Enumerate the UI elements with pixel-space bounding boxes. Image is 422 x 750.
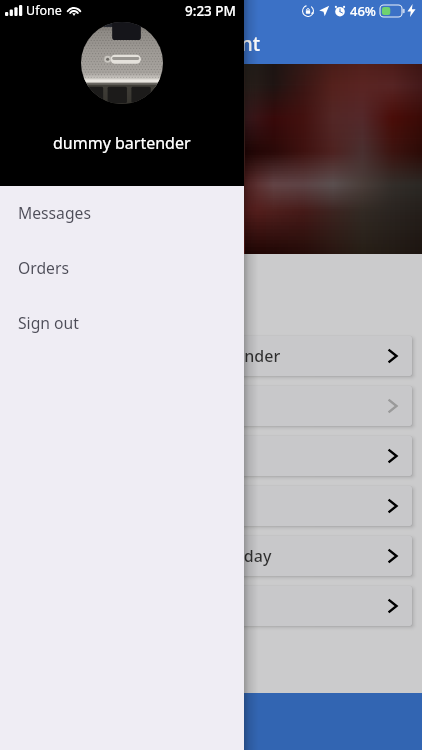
- button[interactable]: Sign out: [0, 297, 244, 352]
- button[interactable]: Orders: [0, 242, 244, 297]
- button[interactable]: [10, 386, 412, 426]
- staticText: Orders: [18, 257, 69, 278]
- staticText: Messages: [18, 202, 91, 223]
- button[interactable]: Wednesday: [10, 536, 412, 576]
- button[interactable]: [10, 486, 412, 526]
- staticText: 9:23 PM: [185, 2, 236, 20]
- staticText: Wednesday: [183, 545, 272, 567]
- staticText: Monday 7pm Bartender: [98, 345, 281, 367]
- button[interactable]: [10, 436, 412, 476]
- button[interactable]: [10, 586, 412, 626]
- staticText: Appointment: [140, 31, 261, 57]
- button[interactable]: Messages: [0, 187, 244, 242]
- staticText: Ufone: [26, 2, 62, 19]
- staticText: dummy bartender: [53, 132, 191, 154]
- staticText: 46%: [350, 2, 376, 20]
- staticText: Sign out: [18, 312, 79, 333]
- button[interactable]: Monday 7pm Bartender: [10, 336, 412, 376]
